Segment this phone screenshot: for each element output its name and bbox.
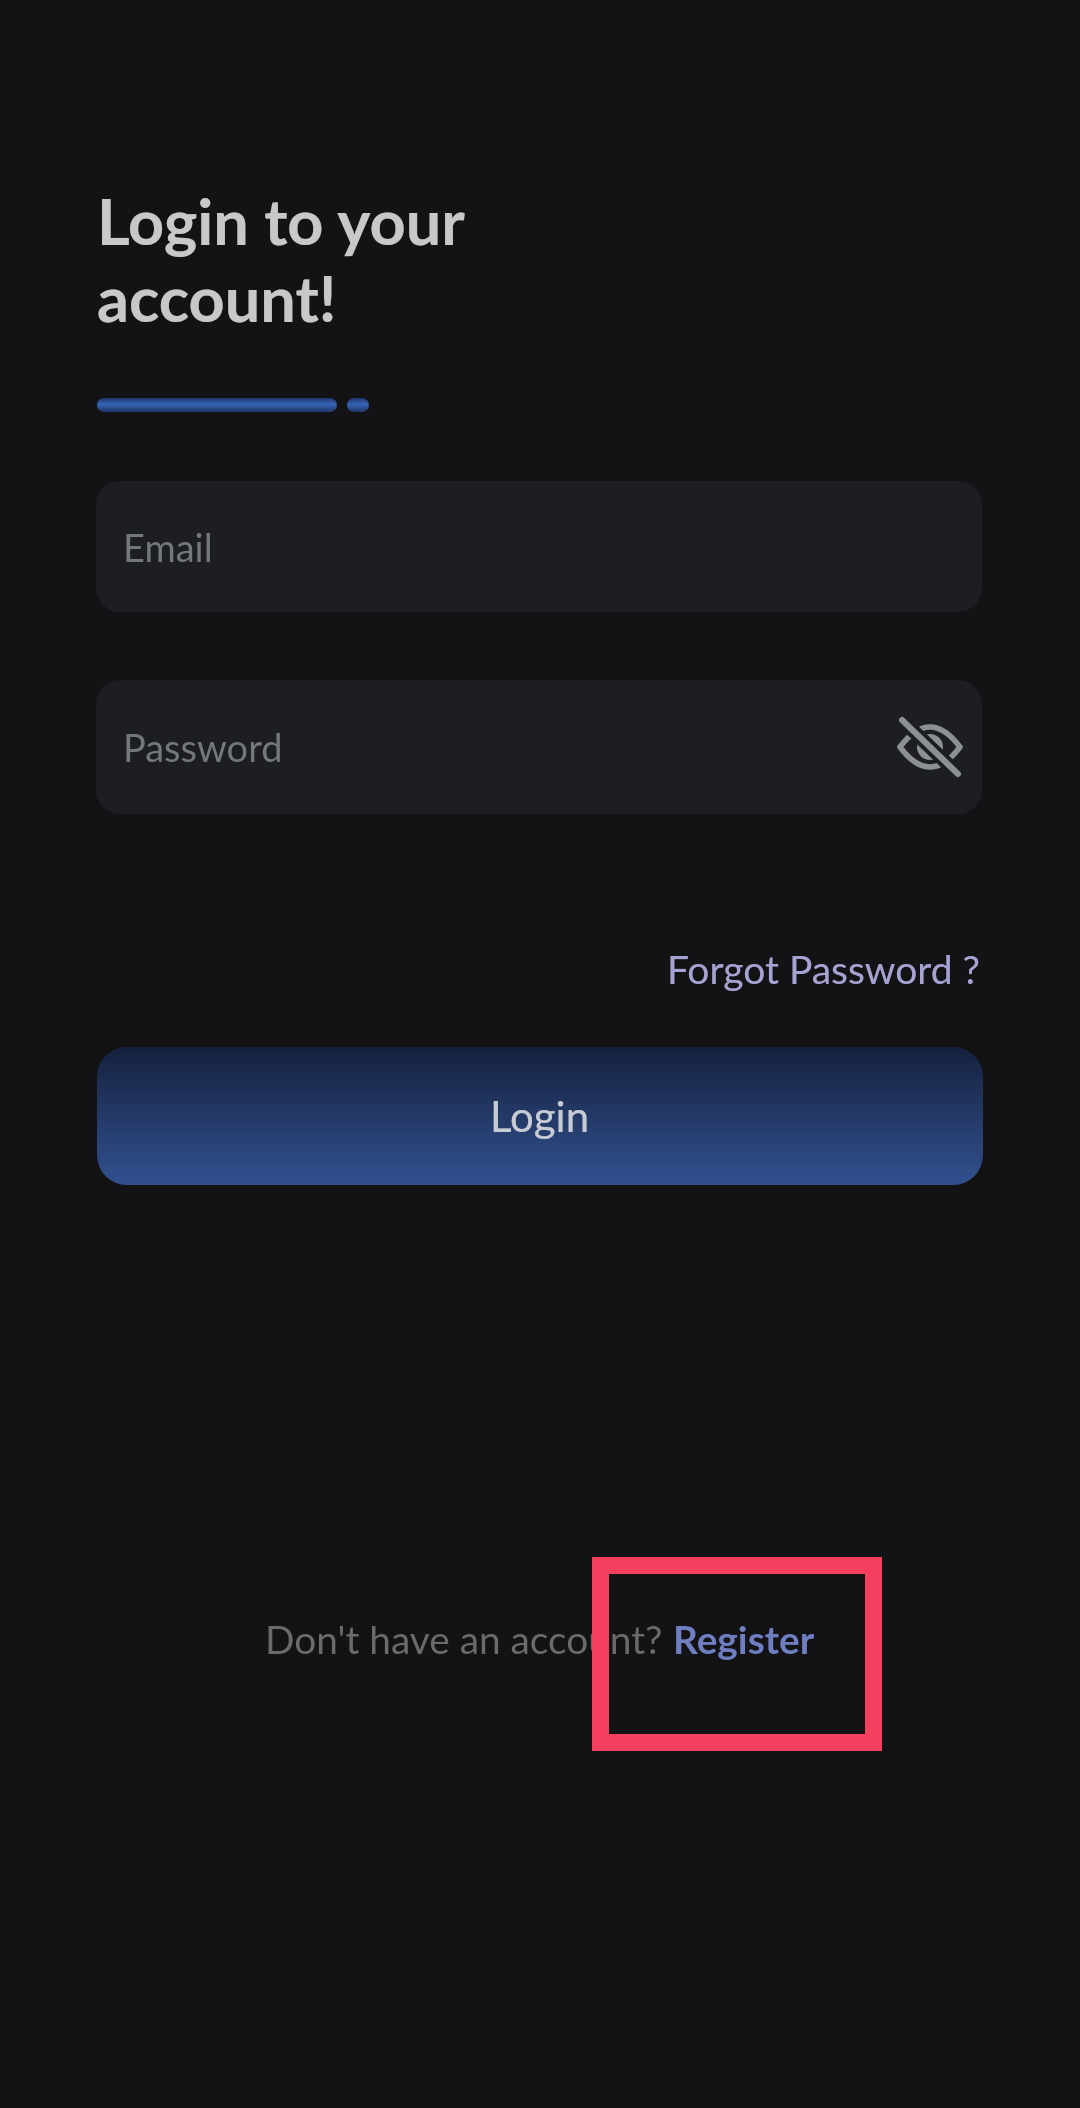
staticText: Email xyxy=(123,524,213,570)
staticText: Login to your xyxy=(97,183,465,259)
staticText: Login xyxy=(490,1091,590,1141)
button[interactable]: Password xyxy=(96,680,982,814)
button[interactable] xyxy=(899,716,961,778)
staticText: Don't have an account? xyxy=(265,1616,673,1663)
button[interactable] xyxy=(592,1557,882,1751)
button[interactable]: Login xyxy=(97,1047,983,1185)
button[interactable]: Forgot Password ? xyxy=(667,946,981,993)
staticText: account! xyxy=(97,260,337,336)
staticText: Password xyxy=(123,724,283,770)
staticText: Register xyxy=(673,1616,815,1663)
button[interactable]: Email xyxy=(96,481,982,612)
